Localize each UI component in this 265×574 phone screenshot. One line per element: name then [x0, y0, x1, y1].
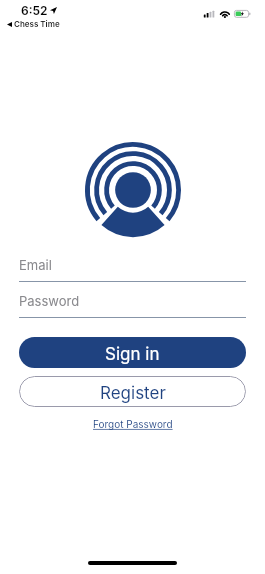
- staticText: Forgot Password: [93, 418, 173, 430]
- staticText: Sign in: [105, 344, 160, 365]
- button[interactable]: Password: [19, 293, 246, 318]
- button[interactable]: Email: [19, 257, 246, 282]
- staticText: Password: [19, 293, 80, 309]
- staticText: Register: [100, 383, 166, 404]
- button[interactable]: Sign in: [19, 337, 246, 368]
- button[interactable]: Register: [19, 376, 246, 407]
- staticText: 6:52: [21, 3, 48, 18]
- staticText: Email: [19, 257, 52, 273]
- staticText: Chess Time: [14, 19, 60, 29]
- button[interactable]: Forgot Password: [93, 418, 173, 430]
